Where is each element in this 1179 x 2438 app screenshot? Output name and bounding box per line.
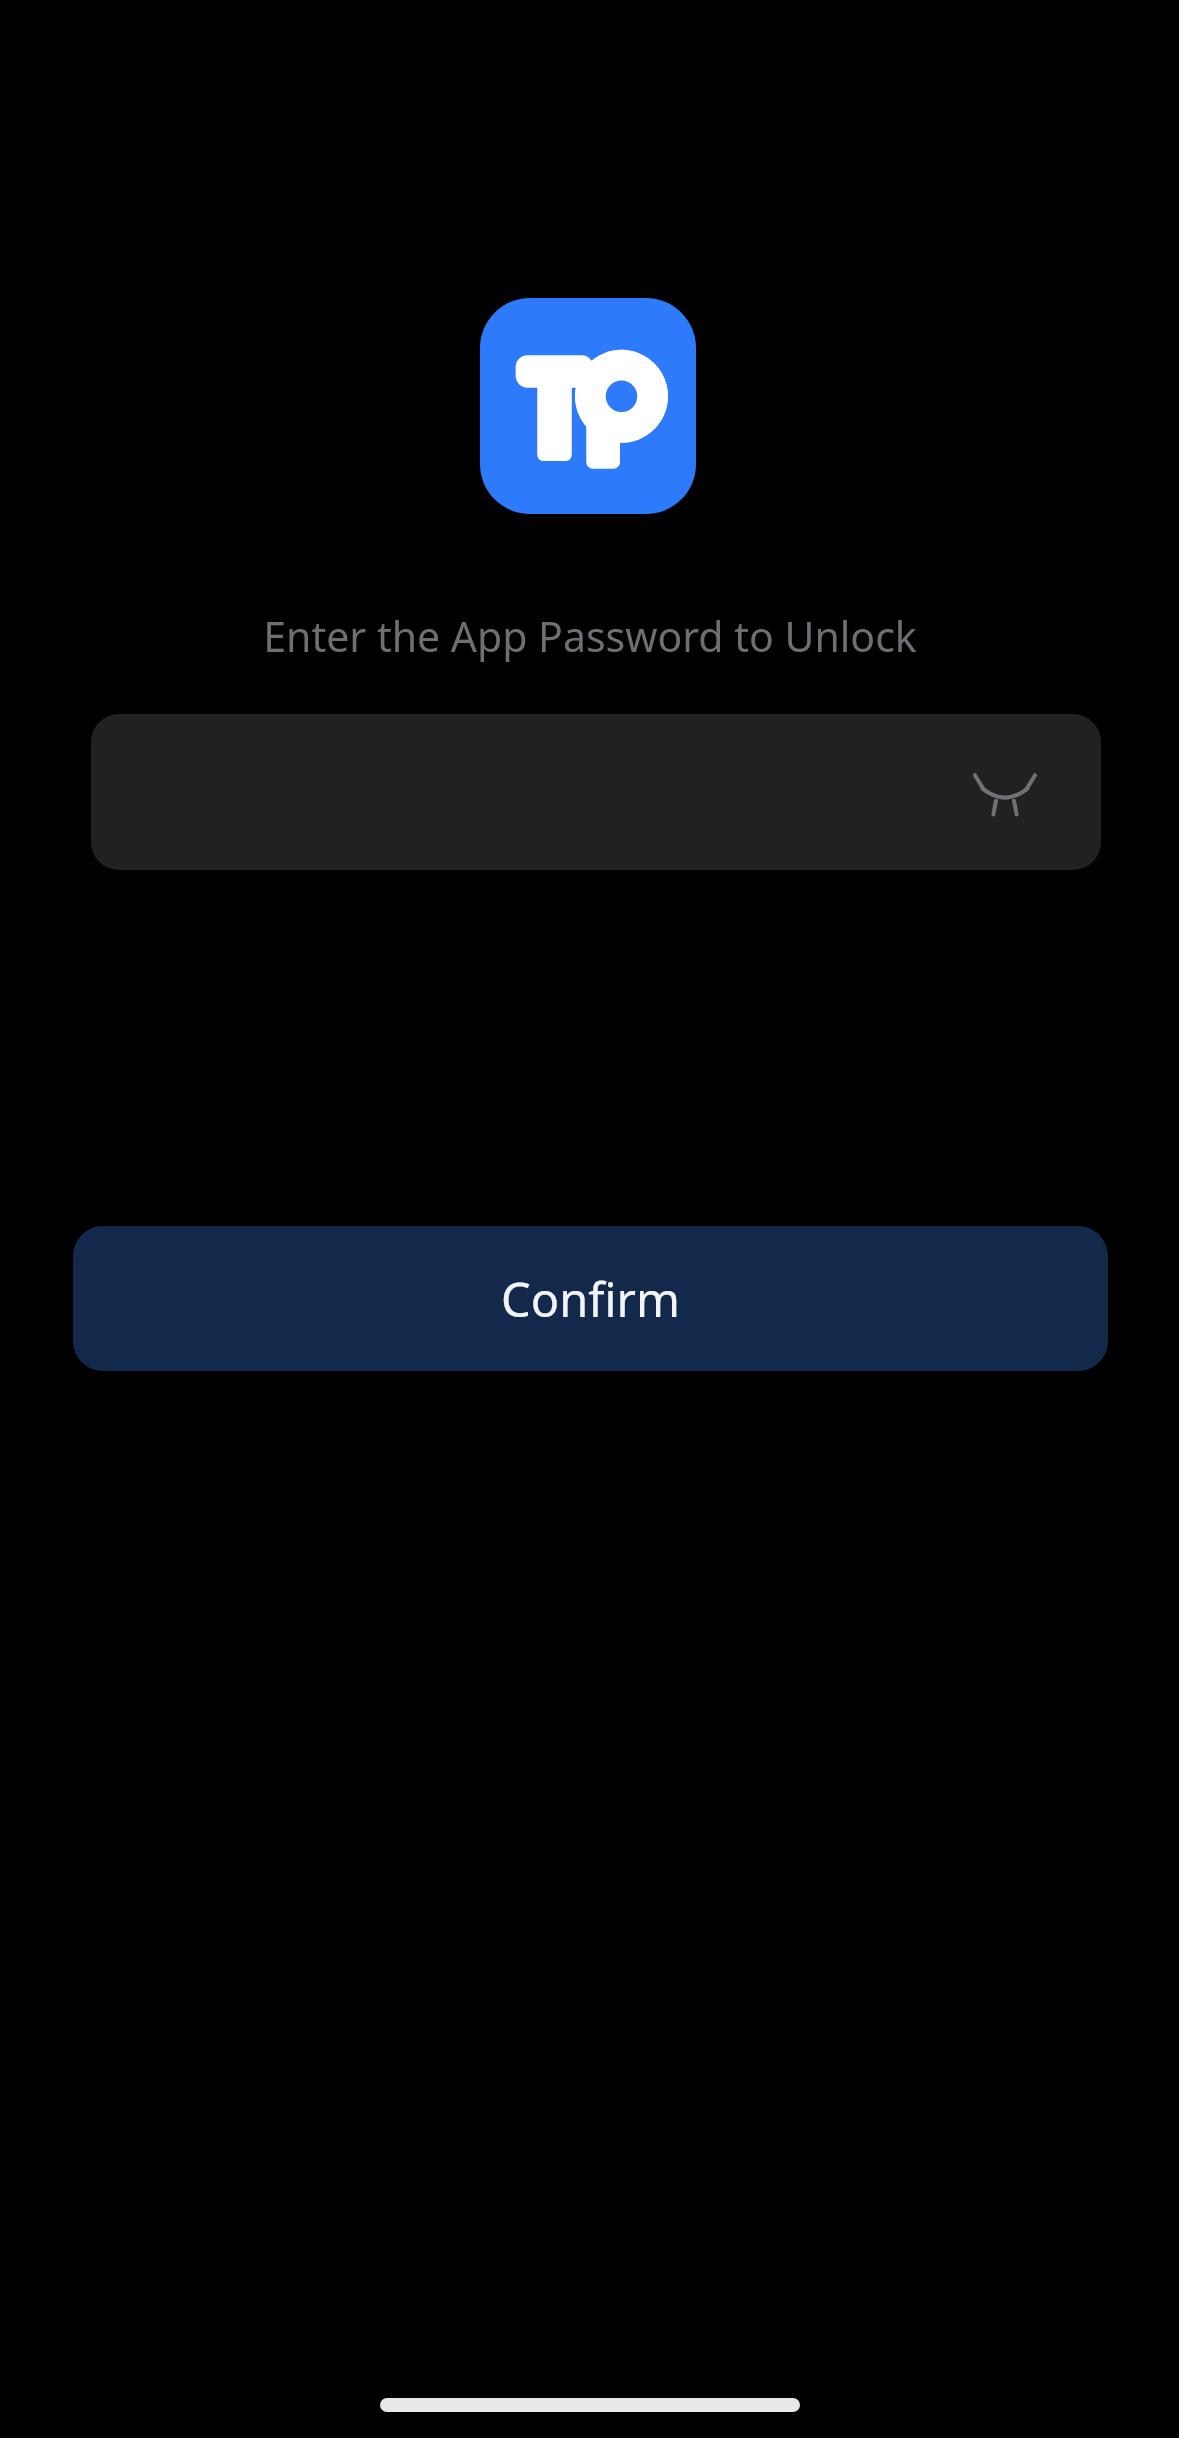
staticText: Confirm	[501, 1267, 680, 1331]
button[interactable]: Show password	[91, 714, 1101, 870]
button[interactable]: Show password	[967, 754, 1043, 830]
button[interactable]: Confirm	[73, 1226, 1108, 1371]
staticText: Enter the App Password to Unlock	[263, 608, 917, 664]
